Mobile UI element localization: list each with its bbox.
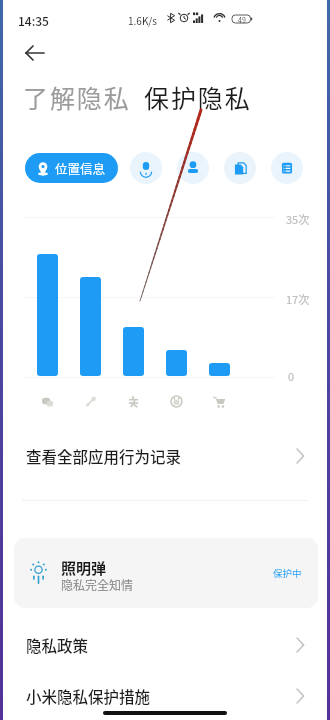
staticText: 查看全部应用行为记录: [26, 445, 182, 467]
button[interactable]: 了解隐私: [23, 79, 131, 115]
button[interactable]: 位置信息: [25, 153, 118, 183]
button[interactable]: Calendar: [271, 152, 303, 184]
staticText: 位置信息: [55, 159, 106, 177]
staticText: 0: [288, 368, 295, 384]
button[interactable]: Back: [18, 36, 52, 70]
button[interactable]: Contacts: [177, 152, 209, 184]
button[interactable]: 小米隐私保护措施: [0, 673, 330, 719]
staticText: 隐私完全知情: [61, 576, 134, 593]
staticText: 保护隐私: [144, 79, 252, 115]
button[interactable]: Files: [224, 152, 256, 184]
staticText: 照明弹: [61, 557, 107, 579]
button[interactable]: 隐私政策: [0, 622, 330, 668]
staticText: 保护中: [273, 566, 302, 580]
staticText: 35次: [286, 211, 310, 227]
button[interactable]: 保护隐私: [144, 79, 252, 115]
staticText: 小米隐私保护措施: [26, 685, 151, 707]
button[interactable]: 查看全部应用行为记录: [0, 433, 330, 479]
staticText: 隐私政策: [26, 634, 89, 656]
staticText: 了解隐私: [23, 79, 131, 115]
button[interactable]: Microphone: [130, 152, 162, 184]
staticText: 1.6K/s: [128, 13, 157, 27]
staticText: 49: [238, 15, 246, 23]
staticText: 14:35: [18, 12, 49, 29]
staticText: 17次: [286, 291, 310, 307]
button[interactable]: 照明弹: [14, 538, 318, 608]
